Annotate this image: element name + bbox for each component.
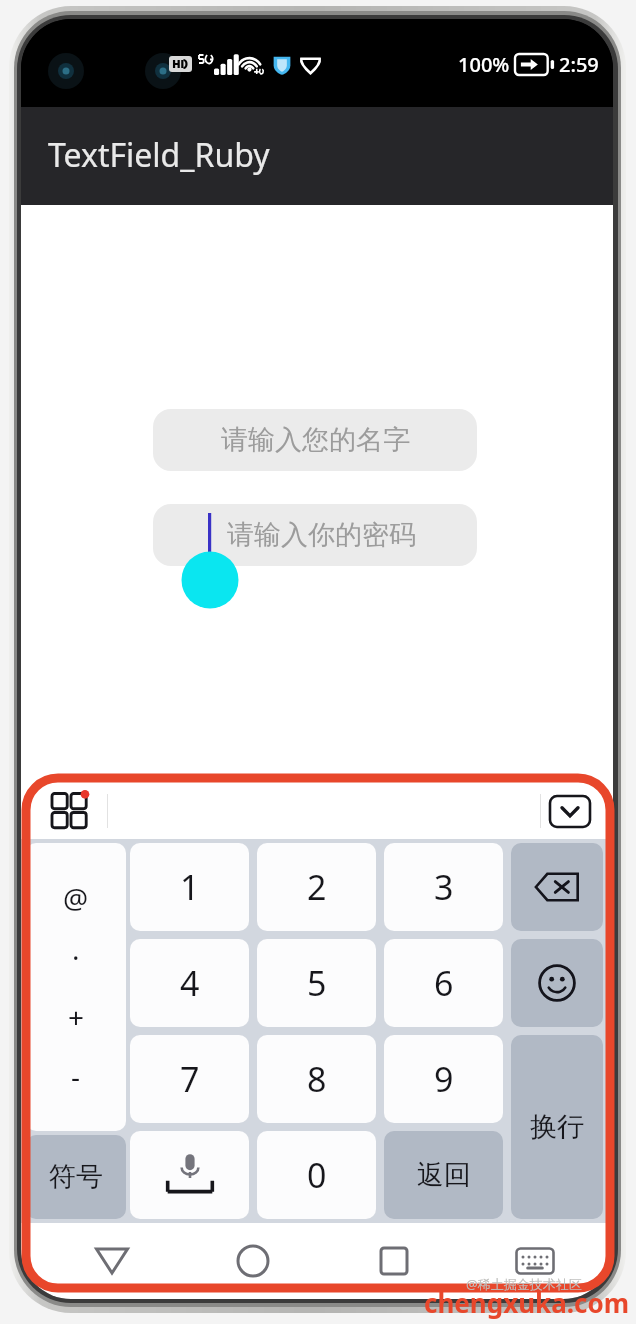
button[interactable]: 7: [130, 1035, 249, 1123]
button[interactable]: 4: [130, 939, 249, 1027]
button[interactable]: Hide keyboard: [547, 791, 593, 831]
button[interactable]: Recents: [323, 1223, 464, 1299]
staticText: 9: [434, 1056, 454, 1102]
staticText: 2:59: [559, 51, 599, 78]
staticText: 5: [307, 960, 327, 1006]
staticText: TextField_Ruby: [48, 133, 270, 177]
button[interactable]: [511, 843, 603, 931]
button[interactable]: 请输入您的名字: [153, 409, 477, 471]
staticText: @: [63, 879, 89, 917]
button[interactable]: 8: [257, 1035, 376, 1123]
button[interactable]: Keyboard panels: [45, 785, 97, 837]
staticText: 请输入你的密码: [227, 518, 416, 552]
staticText: 0: [307, 1152, 327, 1198]
button[interactable]: Home: [182, 1223, 323, 1299]
staticText: 6: [434, 960, 454, 1006]
button[interactable]: 6: [384, 939, 503, 1027]
button[interactable]: 符号: [26, 1135, 126, 1219]
button[interactable]: 3: [384, 843, 503, 931]
staticText: 3: [434, 864, 454, 910]
staticText: -: [71, 1057, 81, 1095]
button[interactable]: 换行: [511, 1035, 603, 1219]
staticText: 2: [307, 864, 327, 910]
button[interactable]: 返回: [384, 1131, 503, 1219]
staticText: 7: [180, 1056, 200, 1102]
button[interactable]: [511, 939, 603, 1027]
staticText: 符号: [49, 1160, 103, 1194]
staticText: 100%: [458, 51, 510, 78]
staticText: 换行: [530, 1110, 584, 1144]
staticText: ·: [72, 938, 80, 976]
staticText: chengxuka.com: [424, 1285, 630, 1320]
button[interactable]: Switch keyboard: [464, 1223, 605, 1299]
staticText: +: [68, 998, 85, 1036]
button[interactable]: 9: [384, 1035, 503, 1123]
button[interactable]: Back: [41, 1223, 182, 1299]
button[interactable]: 2: [257, 843, 376, 931]
staticText: 8: [307, 1056, 327, 1102]
staticText: 4: [180, 960, 200, 1006]
staticText: 请输入您的名字: [221, 423, 410, 457]
staticText: 返回: [417, 1158, 471, 1192]
staticText: 1: [180, 864, 200, 910]
staticText: @稀土掘金技术社区: [466, 1275, 582, 1293]
button[interactable]: 5: [257, 939, 376, 1027]
button[interactable]: @: [26, 843, 126, 1131]
button[interactable]: 请输入你的密码: [153, 504, 477, 566]
button[interactable]: [130, 1131, 249, 1219]
button[interactable]: 0: [257, 1131, 376, 1219]
button[interactable]: 1: [130, 843, 249, 931]
